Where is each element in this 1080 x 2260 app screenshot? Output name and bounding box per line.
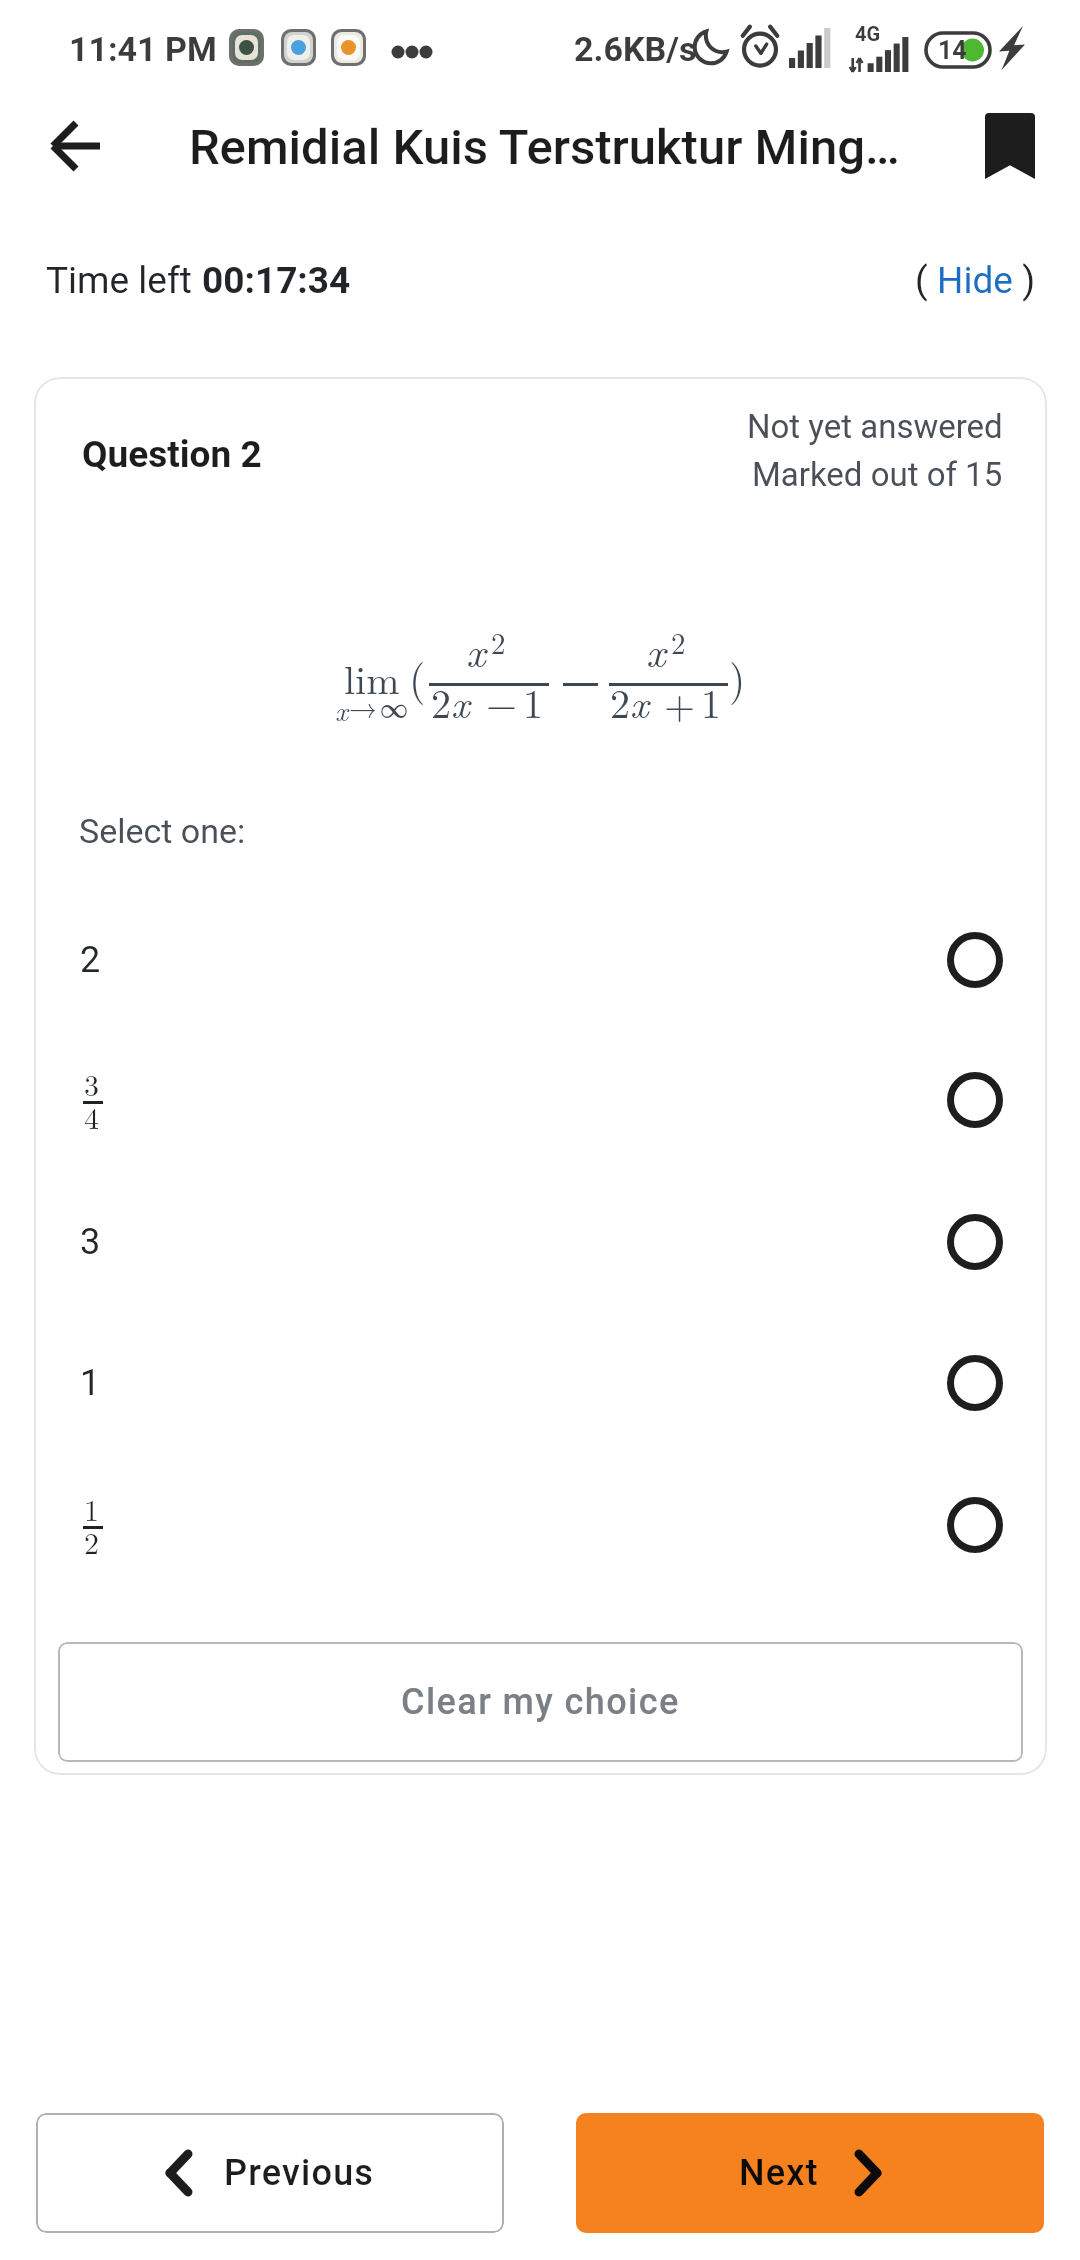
staticText: ) [1013, 259, 1036, 302]
button[interactable]: Bookmark [960, 96, 1060, 196]
staticText: 00:17:34 [202, 259, 351, 302]
staticText: x [466, 620, 486, 679]
staticText: 3 [80, 1221, 101, 1263]
button[interactable]: 2 [34, 890, 1047, 1030]
button[interactable]: Clear my choice [58, 1642, 1023, 1762]
staticText: x [646, 620, 666, 679]
staticText: 1 [80, 1362, 101, 1404]
staticText: lim [344, 649, 400, 706]
button[interactable]: Previous [36, 2113, 504, 2233]
staticText: x [335, 689, 348, 729]
staticText: ( [409, 647, 426, 707]
staticText: ( [915, 259, 937, 302]
staticText: 11:41 PM [69, 29, 217, 69]
staticText: → [349, 686, 378, 726]
staticText: 4G [855, 22, 881, 45]
staticText: 3 [84, 1062, 99, 1105]
staticText: 2 [491, 621, 506, 662]
staticText: Remidial Kuis Terstruktur Ming… [189, 119, 900, 176]
staticText: 2 [84, 1520, 99, 1563]
staticText: 2.6KB/s [574, 29, 697, 69]
button[interactable]: Next [576, 2113, 1044, 2233]
staticText: Question 2 [82, 433, 262, 476]
staticText: 1 [84, 1487, 99, 1530]
staticText: Marked out of 15 [752, 455, 1003, 494]
staticText: Hide [937, 259, 1013, 302]
button[interactable]: 1 [34, 1455, 1047, 1595]
staticText: x [451, 673, 470, 730]
staticText: 2 [431, 673, 451, 730]
staticText: 14 [938, 36, 967, 65]
button[interactable]: Hide [937, 259, 1013, 302]
staticText: Previous [224, 2152, 375, 2194]
button[interactable]: Back [28, 98, 124, 194]
staticText: − [486, 673, 518, 730]
staticText: 2 [671, 621, 686, 662]
staticText: 2 [80, 939, 101, 981]
button[interactable]: 3 [34, 1030, 1047, 1170]
staticText: 1 [523, 673, 543, 730]
staticText: Select one: [79, 811, 246, 851]
staticText: + [664, 674, 696, 731]
staticText: Next [739, 2152, 819, 2194]
staticText: Not yet answered [747, 407, 1003, 446]
staticText: 2 [610, 673, 630, 730]
staticText: Time left [46, 259, 202, 302]
button[interactable]: 3 [34, 1172, 1047, 1312]
staticText: ∞ [380, 686, 409, 726]
staticText: Clear my choice [401, 1681, 680, 1723]
staticText: x [630, 673, 649, 730]
staticText: ) [729, 647, 746, 707]
button[interactable]: 1 [34, 1313, 1047, 1453]
staticText: 1 [701, 673, 721, 730]
staticText: 4 [84, 1095, 99, 1138]
